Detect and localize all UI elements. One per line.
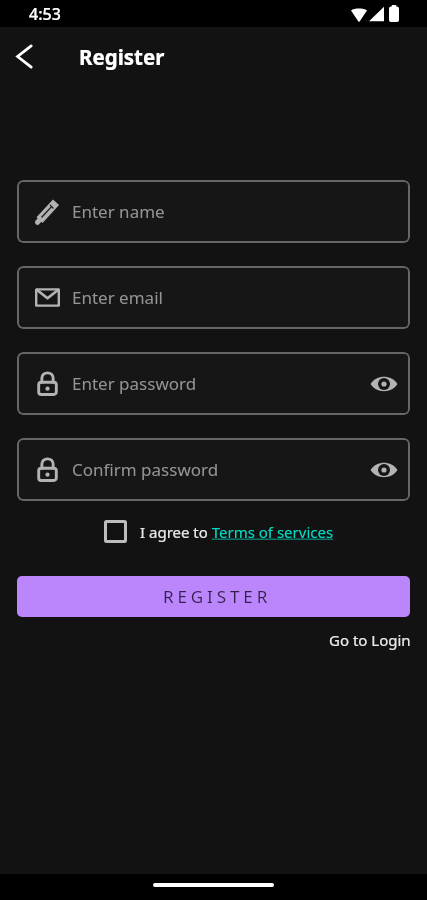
button[interactable]: Enter password <box>17 352 410 415</box>
button[interactable]: Agree to terms of services <box>104 520 127 543</box>
button[interactable]: Back <box>2 34 46 78</box>
button[interactable]: Confirm password <box>17 438 410 501</box>
button[interactable]: Enter name <box>17 180 410 243</box>
button[interactable]: Go to Login <box>329 630 411 650</box>
button[interactable]: REGISTER <box>17 576 410 617</box>
staticText: Enter name <box>72 200 165 223</box>
staticText: REGISTER <box>163 585 272 608</box>
staticText: 4:53 <box>29 3 61 25</box>
staticText: Confirm password <box>72 458 219 481</box>
button[interactable]: Show password <box>367 453 401 487</box>
staticText: Register <box>79 43 165 71</box>
button[interactable]: Show password <box>367 367 401 401</box>
staticText: Enter password <box>72 372 197 395</box>
button[interactable]: Enter email <box>17 266 410 329</box>
button[interactable]: I agree to Terms of services <box>140 522 334 542</box>
staticText: Enter email <box>72 286 163 309</box>
